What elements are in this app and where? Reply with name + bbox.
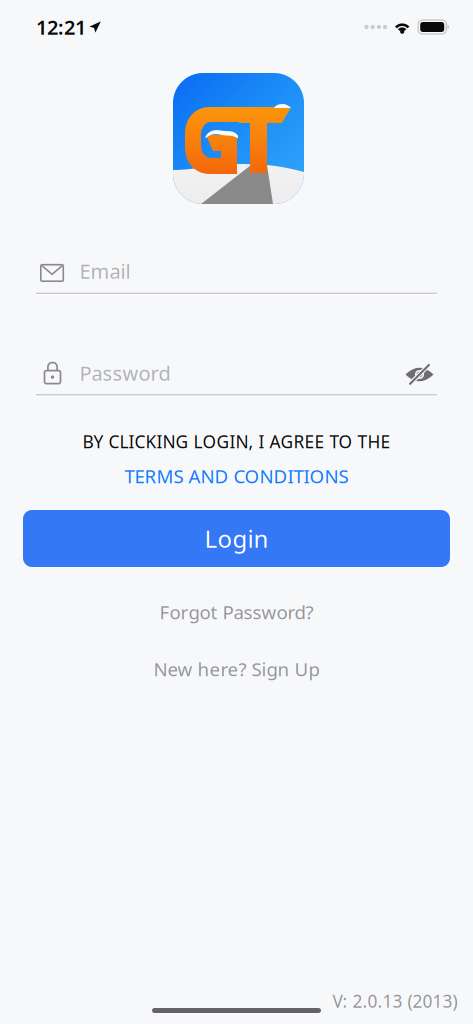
button[interactable]: Forgot Password? — [136, 594, 336, 630]
button[interactable]: Email — [36, 248, 437, 294]
staticText: TERMS AND CONDITIONS — [124, 464, 348, 488]
staticText: BY CLICKING LOGIN, I AGREE TO THE — [82, 430, 390, 453]
button[interactable]: New here? Sign Up — [126, 651, 346, 687]
staticText: Password — [80, 360, 171, 386]
button[interactable]: Login — [23, 510, 450, 567]
staticText: Email — [80, 258, 131, 284]
staticText: 12:21 — [36, 14, 86, 40]
staticText: Login — [204, 523, 268, 554]
staticText: V: 2.0.13 (2013) — [332, 989, 457, 1012]
button[interactable]: Password — [36, 349, 437, 395]
staticText: Forgot Password? — [159, 600, 313, 624]
button[interactable]: TERMS AND CONDITIONS — [106, 461, 366, 491]
button[interactable]: Show password — [397, 353, 441, 397]
staticText: New here? Sign Up — [153, 657, 319, 681]
